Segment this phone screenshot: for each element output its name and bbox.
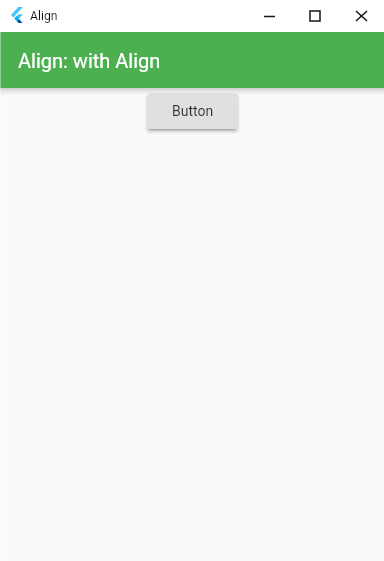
button[interactable]: Close xyxy=(338,0,384,32)
staticText: Button xyxy=(172,103,214,119)
staticText: Align xyxy=(30,9,58,23)
button[interactable]: Maximize xyxy=(292,0,338,32)
staticText: Align: with Align xyxy=(18,49,161,72)
button[interactable]: Minimize xyxy=(246,0,292,32)
button[interactable]: Button xyxy=(148,93,237,129)
